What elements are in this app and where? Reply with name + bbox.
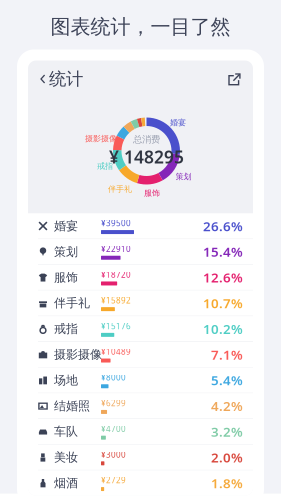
staticText: 美妆 bbox=[54, 450, 78, 465]
staticText: 7.1% bbox=[211, 346, 243, 363]
button[interactable]: 烟酒 bbox=[28, 470, 253, 495]
staticText: 3.2% bbox=[211, 423, 243, 440]
button[interactable]: 服饰 bbox=[28, 265, 253, 290]
staticText: 统计 bbox=[49, 68, 83, 90]
staticText: ¥39500 bbox=[101, 218, 131, 228]
staticText: ¥3000 bbox=[101, 449, 126, 460]
button[interactable]: 戒指 bbox=[28, 316, 253, 341]
staticText: 伴手礼 bbox=[108, 184, 132, 194]
staticText: 26.6% bbox=[203, 217, 243, 235]
staticText: 戒指 bbox=[54, 321, 78, 336]
staticText: 烟酒 bbox=[54, 476, 78, 490]
button[interactable]: 统计 bbox=[32, 63, 91, 95]
staticText: 图表统计，一目了然 bbox=[50, 14, 230, 39]
staticText: ¥22910 bbox=[101, 244, 131, 254]
staticText: 10.7% bbox=[203, 294, 243, 312]
staticText: 服饰 bbox=[144, 188, 160, 198]
staticText: 婚宴 bbox=[170, 118, 186, 127]
staticText: 策划 bbox=[54, 244, 78, 259]
button[interactable]: 婚宴 bbox=[28, 213, 253, 238]
staticText: 服饰 bbox=[54, 270, 78, 285]
staticText: 总消费 bbox=[133, 134, 160, 145]
button[interactable]: 分享 bbox=[220, 67, 249, 90]
staticText: 12.6% bbox=[203, 268, 243, 286]
staticText: 场地 bbox=[54, 373, 78, 387]
staticText: 伴手礼 bbox=[54, 296, 90, 310]
button[interactable]: 场地 bbox=[28, 368, 253, 393]
button[interactable]: 车队 bbox=[28, 419, 253, 444]
button[interactable]: 美妆 bbox=[28, 445, 253, 470]
button[interactable]: 摄影摄像 bbox=[28, 342, 253, 367]
staticText: 15.4% bbox=[203, 243, 243, 260]
staticText: ¥18720 bbox=[101, 269, 131, 280]
button[interactable]: 伴手礼 bbox=[28, 291, 253, 316]
staticText: ¥15176 bbox=[101, 321, 131, 331]
staticText: ¥10489 bbox=[101, 346, 131, 357]
staticText: 婚宴 bbox=[54, 219, 78, 233]
staticText: 摄影摄像 bbox=[85, 134, 117, 143]
staticText: 10.2% bbox=[203, 320, 243, 338]
staticText: ¥8000 bbox=[101, 372, 126, 383]
staticText: ¥ 148295 bbox=[109, 145, 184, 168]
staticText: 2.0% bbox=[211, 448, 243, 466]
staticText: ¥2729 bbox=[101, 475, 126, 485]
button[interactable]: 策划 bbox=[28, 239, 253, 264]
button[interactable]: 结婚照 bbox=[28, 393, 253, 418]
staticText: 4.2% bbox=[211, 397, 243, 415]
staticText: ¥4700 bbox=[101, 423, 126, 434]
staticText: 车队 bbox=[54, 424, 78, 439]
staticText: 结婚照 bbox=[54, 398, 90, 413]
staticText: 策划 bbox=[175, 172, 191, 181]
staticText: ¥15892 bbox=[101, 295, 131, 306]
staticText: 5.4% bbox=[211, 371, 243, 389]
staticText: 1.8% bbox=[211, 474, 243, 492]
staticText: 戒指 bbox=[97, 161, 113, 171]
staticText: 摄影摄像 bbox=[54, 347, 102, 362]
staticText: ¥6299 bbox=[101, 398, 126, 408]
